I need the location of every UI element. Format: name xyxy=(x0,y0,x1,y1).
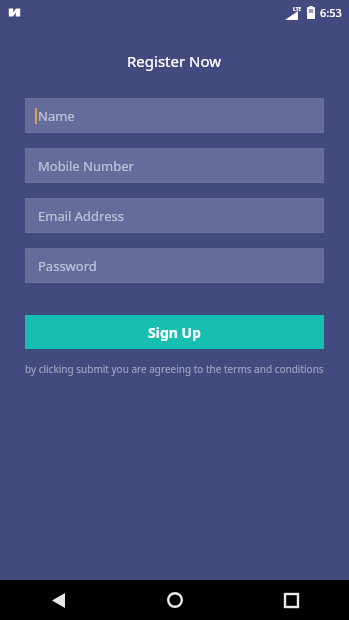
button[interactable]: Mobile Number xyxy=(25,148,324,183)
staticText: Name xyxy=(38,107,75,125)
staticText: Register Now xyxy=(127,51,222,71)
staticText: 6:53 xyxy=(320,5,342,20)
staticText: Mobile Number xyxy=(38,157,134,175)
button[interactable]: Name xyxy=(25,98,324,133)
staticText: LTE xyxy=(293,6,302,13)
staticText: by clicking submit you are agreeing to t… xyxy=(25,362,324,376)
staticText: Password xyxy=(38,257,97,275)
button[interactable]: Sign Up xyxy=(25,315,324,349)
staticText: Sign Up xyxy=(148,323,201,342)
button[interactable]: Back xyxy=(0,580,117,620)
staticText: Email Address xyxy=(38,207,124,225)
button[interactable]: Password xyxy=(25,248,324,283)
button[interactable]: Recent apps xyxy=(233,580,349,620)
button[interactable]: Home xyxy=(117,580,233,620)
button[interactable]: Email Address xyxy=(25,198,324,233)
button[interactable]: by clicking submit you are agreeing to t… xyxy=(25,362,324,376)
